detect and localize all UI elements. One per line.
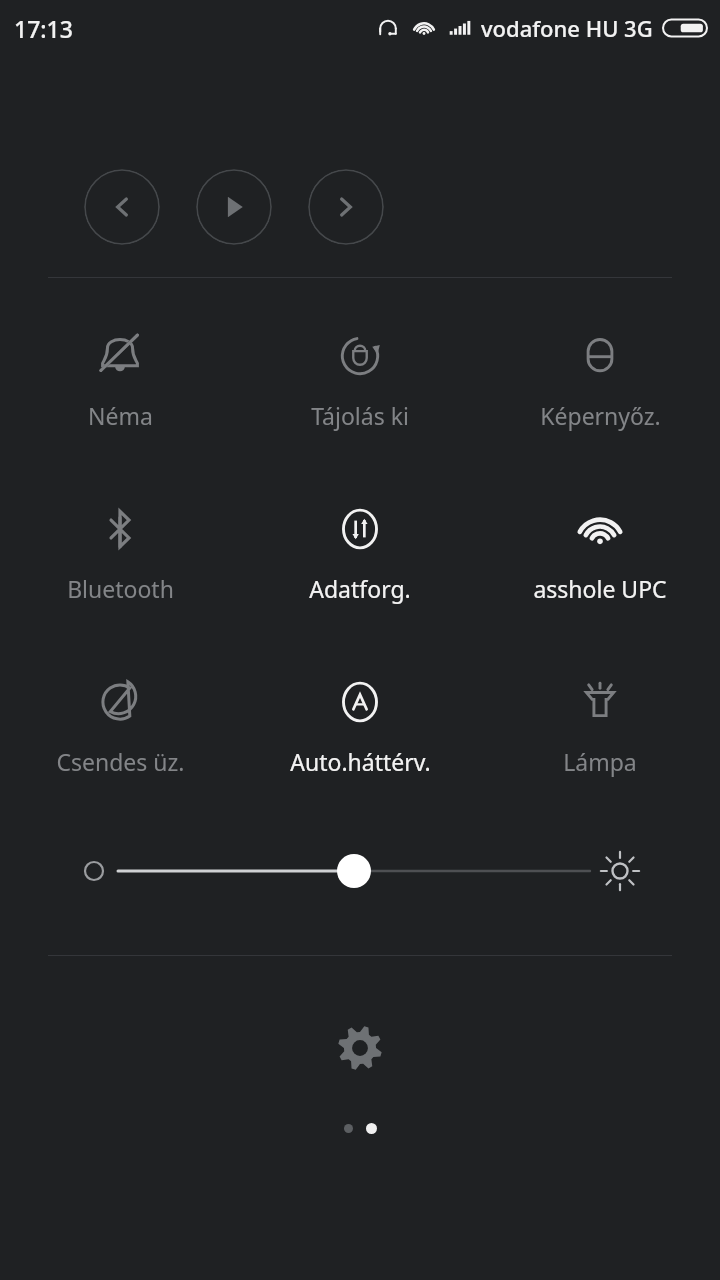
button[interactable]: Next <box>308 169 384 245</box>
button[interactable]: Bluetooth <box>0 498 240 606</box>
staticText: Lámpa <box>563 746 637 777</box>
staticText: Néma <box>88 400 153 431</box>
staticText: Csendes üz. <box>56 746 185 777</box>
button[interactable]: Néma <box>0 325 240 433</box>
staticText: Képernyőz. <box>540 400 661 431</box>
button[interactable]: asshole UPC <box>480 498 720 606</box>
staticText: Auto.háttérv. <box>290 746 431 777</box>
staticText: Bluetooth <box>67 573 174 604</box>
button[interactable]: Tájolás ki <box>240 325 480 433</box>
staticText: 17:13 <box>14 13 73 44</box>
button[interactable]: Brightness <box>0 839 720 903</box>
staticText: Tájolás ki <box>311 400 409 431</box>
button[interactable]: Lámpa <box>480 671 720 779</box>
button[interactable]: Settings <box>328 1016 392 1080</box>
button[interactable]: Képernyőz. <box>480 325 720 433</box>
staticText: asshole UPC <box>533 573 667 604</box>
button[interactable]: Adatforg. <box>240 498 480 606</box>
button[interactable]: Play <box>196 169 272 245</box>
staticText: vodafone HU 3G <box>481 13 653 43</box>
button[interactable]: Previous <box>84 169 160 245</box>
button[interactable]: Csendes üz. <box>0 671 240 779</box>
button[interactable]: Auto.háttérv. <box>240 671 480 779</box>
staticText: Adatforg. <box>309 573 411 604</box>
